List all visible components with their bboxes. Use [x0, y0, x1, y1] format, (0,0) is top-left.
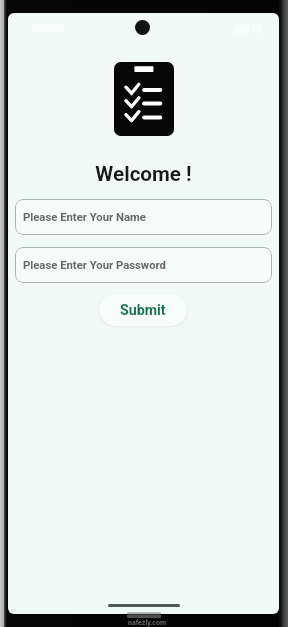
button[interactable]: Please Enter Your Password: [15, 247, 272, 283]
staticText: Please Enter Your Password: [23, 259, 166, 272]
button[interactable]: Submit: [99, 294, 187, 326]
other: Checklist: [114, 62, 174, 136]
staticText: Welcome !: [95, 162, 192, 186]
staticText: Please Enter Your Name: [23, 211, 146, 224]
button[interactable]: Please Enter Your Name: [15, 199, 272, 235]
staticText: nafezly.com: [128, 619, 166, 627]
staticText: Submit: [120, 302, 166, 319]
